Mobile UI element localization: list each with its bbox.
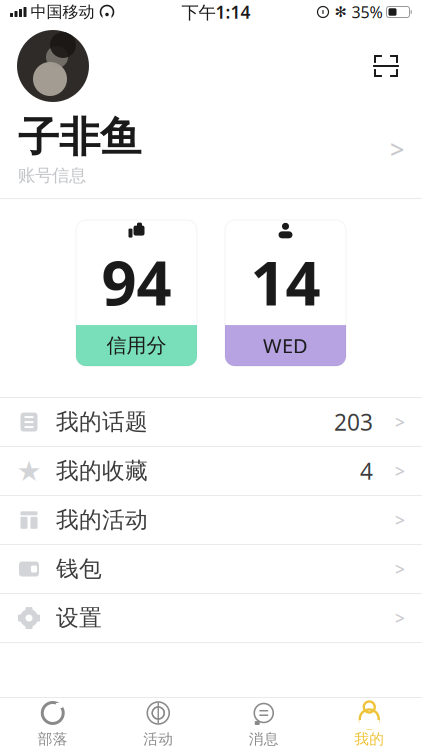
- staticText: 活动: [143, 730, 173, 748]
- staticText: 信用分: [106, 333, 166, 358]
- button[interactable]: ★: [0, 447, 422, 496]
- button[interactable]: 钱包: [0, 545, 422, 594]
- button[interactable]: 我的活动: [0, 496, 422, 545]
- button[interactable]: 94: [76, 220, 197, 366]
- staticText: 账号信息: [18, 165, 86, 186]
- staticText: >: [390, 132, 404, 166]
- staticText: >: [395, 410, 405, 433]
- staticText: 我的: [354, 730, 384, 748]
- button[interactable]: 部落: [0, 698, 105, 750]
- button[interactable]: 活动: [105, 698, 211, 750]
- staticText: 35%: [351, 1, 382, 23]
- staticText: ✻: [334, 4, 346, 20]
- button[interactable]: 子非鱼: [0, 102, 422, 196]
- staticText: 我的收藏: [56, 457, 148, 485]
- staticText: 14: [250, 241, 320, 322]
- staticText: 中国移动: [30, 2, 94, 22]
- staticText: >: [395, 557, 405, 580]
- staticText: >: [395, 459, 405, 482]
- staticText: 我的活动: [56, 506, 148, 534]
- staticText: 94: [101, 241, 171, 322]
- staticText: 钱包: [56, 555, 102, 583]
- staticText: 子非鱼: [18, 112, 141, 163]
- staticText: 下午1:14: [181, 0, 250, 23]
- button[interactable]: 我的话题: [0, 398, 422, 447]
- staticText: >: [395, 606, 405, 629]
- staticText: >: [395, 508, 405, 531]
- staticText: ★: [16, 455, 41, 487]
- button[interactable]: 14: [225, 220, 346, 366]
- staticText: WED: [263, 332, 308, 359]
- staticText: 我的话题: [56, 408, 148, 436]
- staticText: 4: [360, 456, 373, 486]
- button[interactable]: 我的: [316, 698, 422, 750]
- button[interactable]: Scan QR code: [364, 45, 408, 87]
- button[interactable]: 消息: [211, 698, 316, 750]
- staticText: 部落: [38, 730, 68, 748]
- button[interactable]: 设置: [0, 594, 422, 643]
- staticText: 203: [334, 407, 373, 437]
- staticText: 消息: [249, 730, 279, 748]
- staticText: 设置: [56, 604, 102, 632]
